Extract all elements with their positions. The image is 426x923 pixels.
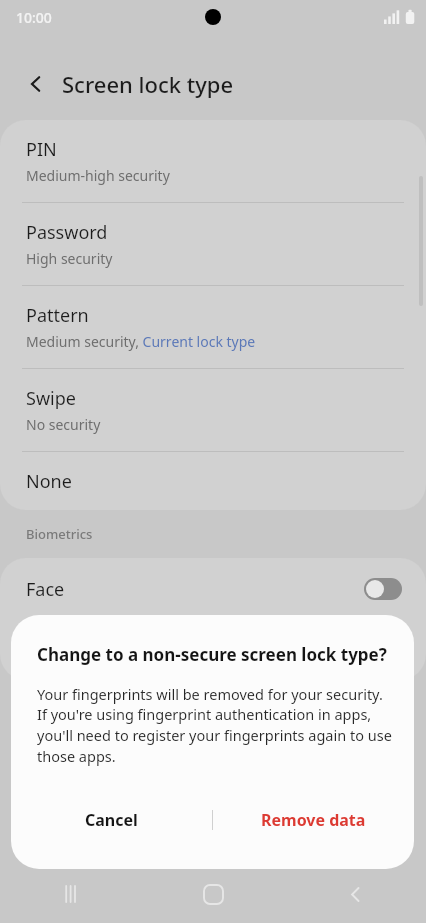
staticText: High security: [26, 249, 113, 268]
staticText: No security: [26, 415, 101, 434]
staticText: Medium-high security: [26, 166, 170, 185]
button[interactable]: Password: [0, 203, 426, 286]
button[interactable]: Pattern: [0, 286, 426, 369]
button[interactable]: Recent apps: [0, 865, 142, 923]
staticText: Pattern: [26, 303, 89, 328]
staticText: Your fingerprints will be removed for yo…: [37, 684, 392, 767]
staticText: Password: [26, 220, 108, 245]
staticText: Biometrics: [26, 525, 93, 543]
staticText: PIN: [26, 137, 57, 162]
staticText: Change to a non-secure screen lock type?: [37, 643, 387, 666]
button[interactable]: Back: [14, 62, 58, 106]
staticText: 10:00: [16, 8, 52, 27]
staticText: Medium security, Current lock type: [26, 332, 256, 351]
button[interactable]: Back: [284, 865, 426, 923]
staticText: Face: [26, 577, 364, 602]
button[interactable]: Swipe: [0, 369, 426, 452]
staticText: Remove data: [261, 809, 366, 831]
button[interactable]: None: [0, 452, 426, 510]
button[interactable]: Home: [142, 865, 284, 923]
button[interactable]: Remove data: [213, 793, 414, 847]
button[interactable]: Face toggle: [364, 578, 402, 600]
button[interactable]: PIN: [0, 120, 426, 203]
staticText: None: [26, 469, 72, 494]
button[interactable]: Cancel: [11, 793, 212, 847]
staticText: Swipe: [26, 386, 76, 411]
staticText: Cancel: [85, 809, 138, 831]
button[interactable]: Face: [0, 558, 426, 620]
staticText: Screen lock type: [62, 69, 234, 99]
